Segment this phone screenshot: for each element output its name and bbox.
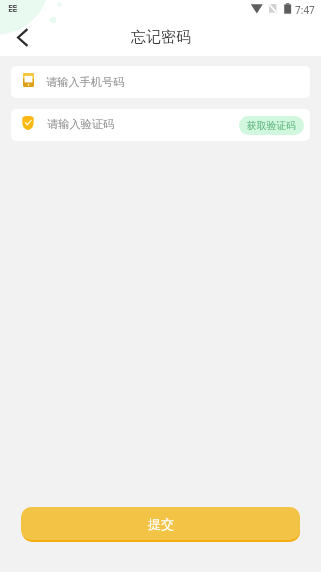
button[interactable]: Back [6, 21, 38, 53]
staticText: 忘记密码 [131, 28, 191, 47]
button[interactable]: 请输入验证码 [11, 109, 310, 141]
staticText: 7:47 [295, 3, 315, 17]
button[interactable]: 请输入手机号码 [11, 66, 310, 98]
staticText: 获取验证码 [247, 120, 296, 132]
button[interactable]: 提交 [21, 507, 300, 540]
staticText: 请输入验证码 [47, 117, 115, 131]
staticText: 提交 [148, 516, 174, 532]
staticText: 请输入手机号码 [46, 75, 125, 89]
button[interactable]: 获取验证码 [239, 116, 304, 135]
